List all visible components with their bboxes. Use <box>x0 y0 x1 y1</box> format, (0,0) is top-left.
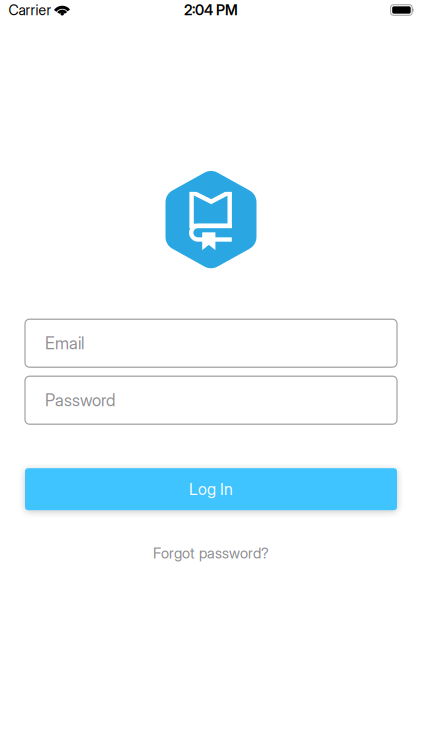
staticText: Log In <box>189 479 233 499</box>
staticText: 2:04 PM <box>184 1 238 19</box>
staticText: Carrier <box>8 1 51 18</box>
button[interactable]: Forgot password? <box>153 540 269 566</box>
staticText: Password <box>45 390 115 410</box>
staticText: Forgot password? <box>153 544 269 562</box>
button[interactable]: Log In <box>25 468 397 510</box>
staticText: Email <box>45 333 84 353</box>
